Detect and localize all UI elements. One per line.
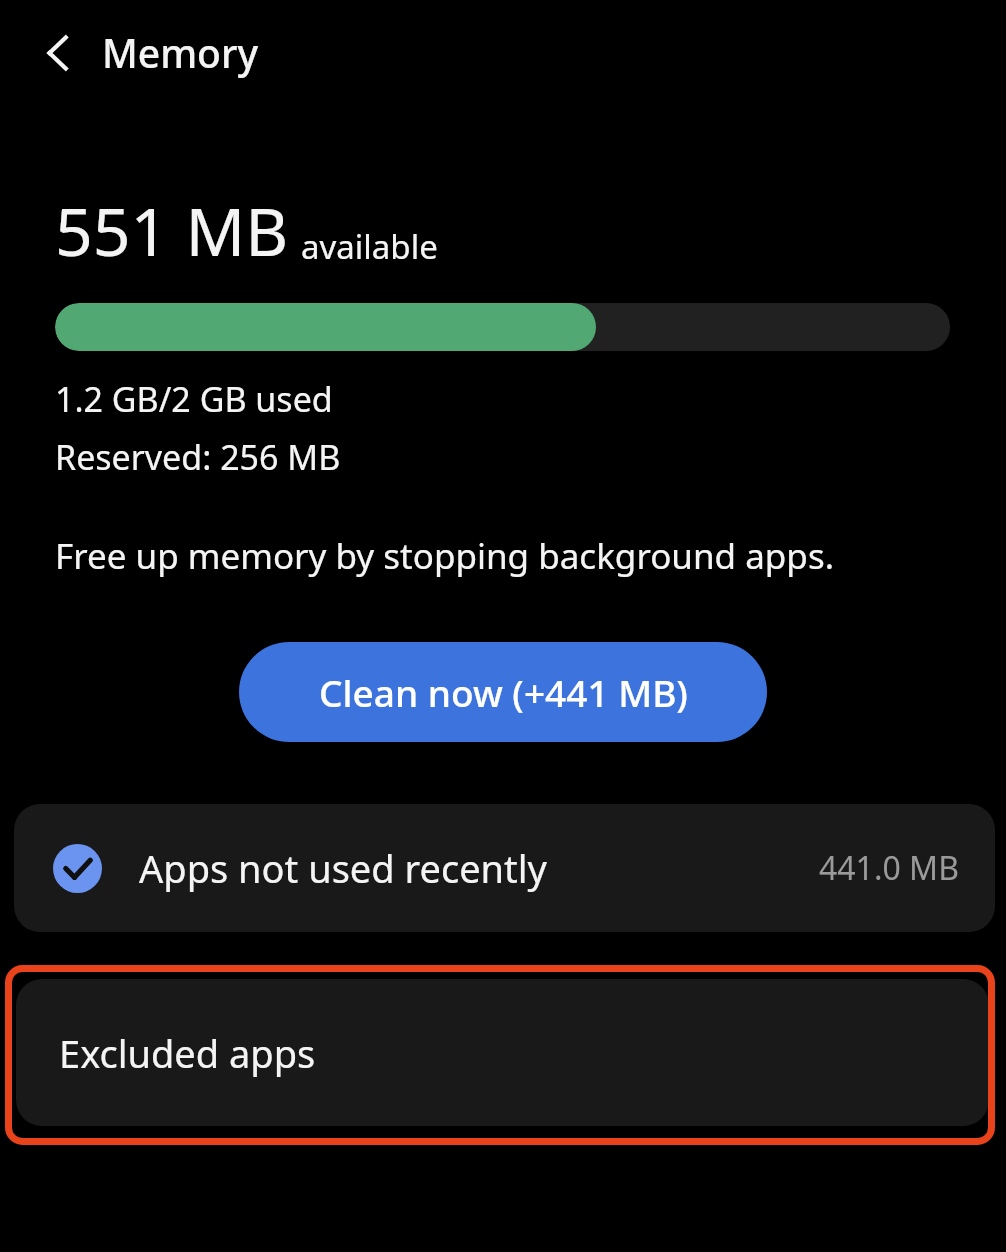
staticText: Reserved: 256 MB — [55, 434, 341, 480]
staticText: Free up memory by stopping background ap… — [55, 532, 835, 580]
staticText: 551 MB — [55, 185, 289, 275]
staticText: Excluded apps — [59, 1027, 316, 1079]
staticText: available — [301, 224, 438, 269]
staticText: 1.2 GB/2 GB used — [55, 376, 333, 422]
button[interactable]: Navigate up — [30, 24, 88, 82]
button[interactable]: Clean now (+441 MB) — [239, 642, 767, 742]
button[interactable]: Apps not used recently — [14, 804, 995, 932]
staticText: Apps not used recently — [139, 842, 547, 894]
staticText: 441.0 MB — [819, 846, 959, 890]
staticText: Memory — [102, 26, 259, 79]
staticText: Clean now (+441 MB) — [319, 667, 688, 717]
button[interactable]: Excluded apps — [16, 979, 989, 1126]
